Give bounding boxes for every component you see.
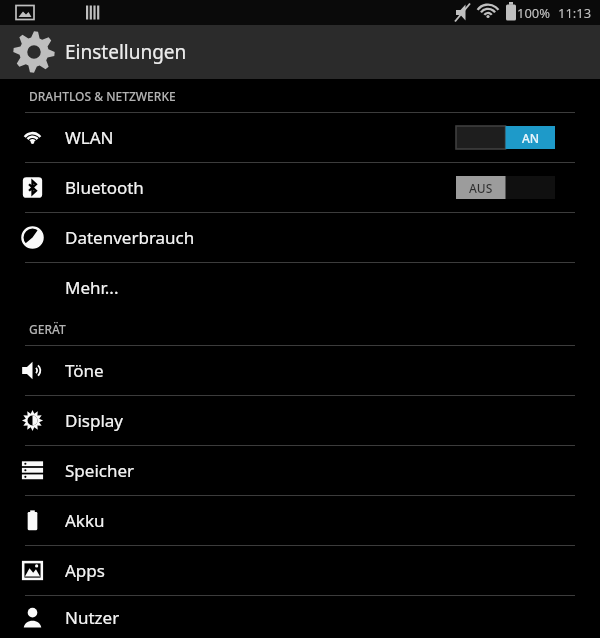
staticText: 11:13 [558, 4, 592, 22]
button[interactable]: Apps [0, 546, 600, 595]
button[interactable]: Akku [0, 496, 600, 545]
button[interactable]: WLAN [0, 113, 600, 162]
staticText: AUS [469, 180, 493, 196]
other: Akku [21, 509, 44, 532]
staticText: Bluetooth [65, 176, 144, 199]
staticText: Display [65, 409, 123, 432]
staticText: Einstellungen [65, 39, 187, 65]
button[interactable]: Nutzer [0, 596, 600, 638]
button[interactable]: Display [0, 396, 600, 445]
staticText: AN [522, 130, 540, 146]
staticText: Datenverbrauch [65, 226, 195, 249]
button[interactable]: An [456, 126, 555, 149]
other: Apps [21, 559, 44, 582]
staticText: Nutzer [65, 606, 120, 629]
button[interactable]: Mehr... [0, 263, 600, 312]
other: Einstellungen [11, 29, 57, 75]
staticText: Akku [65, 509, 105, 532]
staticText: Apps [65, 559, 105, 582]
staticText: 100% [517, 4, 551, 22]
staticText: WLAN [65, 126, 114, 149]
button[interactable]: Speicher [0, 446, 600, 495]
other: Bluetooth [21, 176, 44, 199]
staticText: Töne [65, 359, 104, 382]
button[interactable]: Aus [456, 176, 555, 199]
button[interactable]: Bluetooth [0, 163, 600, 212]
other: Töne [21, 359, 44, 382]
other: Datenverbrauch [21, 226, 44, 249]
other: Display [21, 409, 44, 432]
button[interactable]: Töne [0, 346, 600, 395]
staticText: Speicher [65, 459, 135, 482]
other: Speicher [21, 459, 44, 482]
button[interactable]: Datenverbrauch [0, 213, 600, 262]
other: WLAN [21, 126, 44, 149]
staticText: DRAHTLOS & NETZWERKE [29, 88, 176, 104]
staticText: Mehr... [65, 276, 119, 299]
staticText: GERÄT [29, 321, 66, 337]
other: Nutzer [21, 606, 44, 629]
